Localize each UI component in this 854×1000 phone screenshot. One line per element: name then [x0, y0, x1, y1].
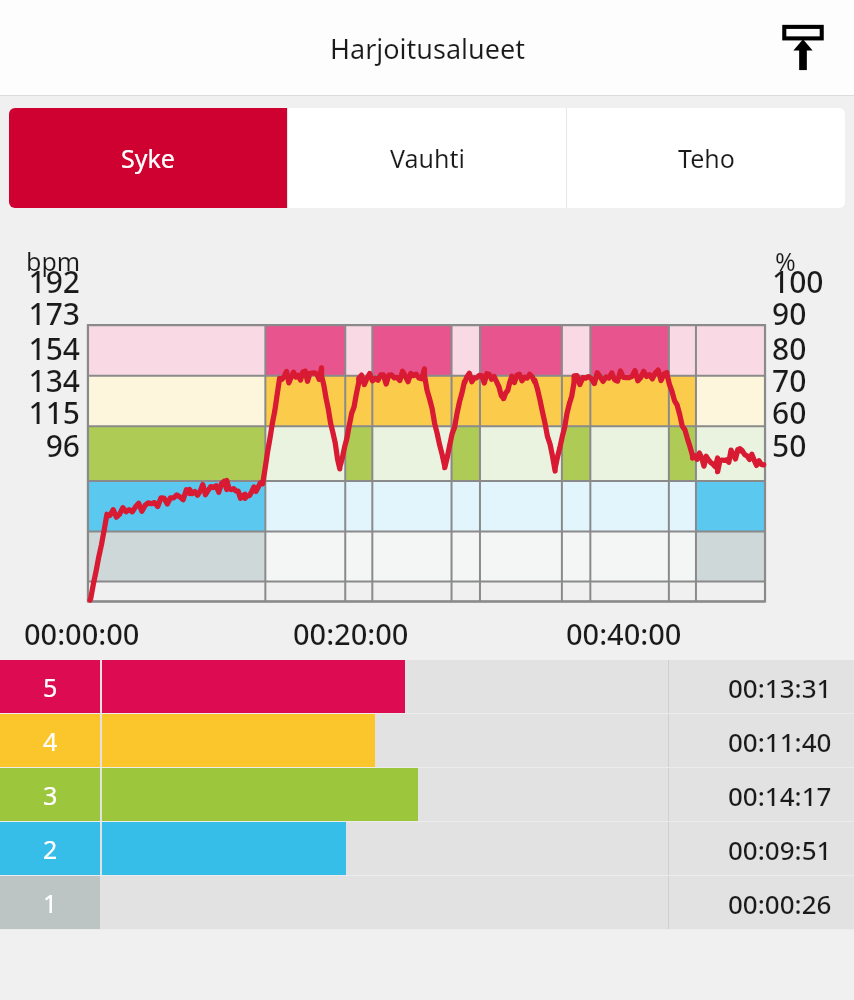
staticText: Vauhti: [390, 141, 465, 175]
staticText: 60: [772, 392, 807, 433]
staticText: Syke: [121, 141, 175, 175]
button[interactable]: Syke: [9, 108, 287, 208]
staticText: 134: [0, 360, 80, 401]
staticText: 3: [43, 778, 58, 812]
button[interactable]: Teho: [567, 108, 845, 208]
staticText: 50: [772, 425, 807, 466]
button[interactable]: 4: [0, 714, 854, 768]
button[interactable]: Vauhti: [288, 108, 566, 208]
staticText: 4: [43, 724, 58, 758]
staticText: 70: [772, 360, 807, 401]
staticText: Teho: [678, 141, 735, 175]
staticText: 96: [0, 425, 80, 466]
staticText: bpm: [26, 244, 81, 278]
staticText: 00:00:00: [24, 614, 140, 653]
staticText: 80: [772, 328, 807, 369]
staticText: 115: [0, 392, 80, 433]
staticText: %: [775, 244, 796, 278]
staticText: 1: [43, 886, 58, 920]
button[interactable]: 2: [0, 822, 854, 876]
staticText: 90: [772, 293, 807, 334]
staticText: 5: [43, 670, 58, 704]
staticText: 192: [0, 261, 80, 302]
staticText: 00:40:00: [566, 614, 682, 653]
staticText: 154: [0, 328, 80, 369]
staticText: 00:00:26: [728, 886, 832, 921]
staticText: 173: [0, 293, 80, 334]
staticText: 100: [772, 261, 824, 302]
button[interactable]: 1: [0, 876, 854, 930]
button[interactable]: 3: [0, 768, 854, 822]
button[interactable]: Export: [774, 19, 832, 77]
staticText: 2: [43, 832, 58, 866]
button[interactable]: 5: [0, 660, 854, 714]
staticText: 00:14:17: [728, 778, 832, 813]
staticText: 00:11:40: [728, 724, 832, 759]
staticText: 00:09:51: [728, 832, 832, 867]
staticText: 00:13:31: [728, 670, 832, 705]
staticText: Harjoitusalueet: [330, 30, 525, 67]
staticText: 00:20:00: [293, 614, 409, 653]
